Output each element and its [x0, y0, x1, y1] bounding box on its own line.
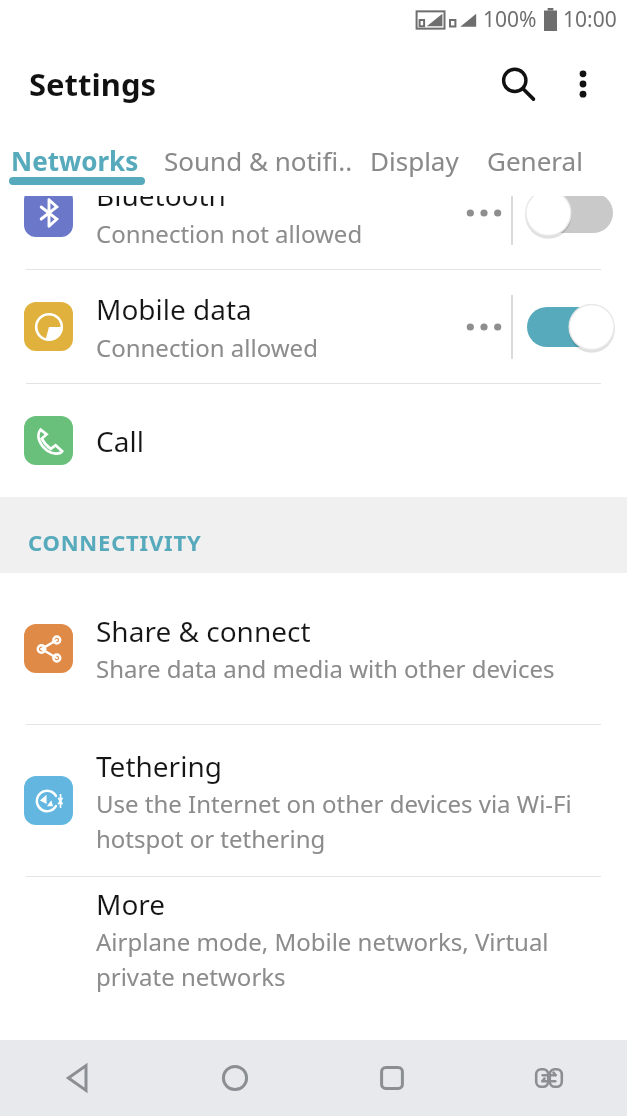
- staticText: Share data and media with other devices: [96, 652, 555, 685]
- button[interactable]: Mobile data switch: [513, 270, 627, 383]
- staticText: Use the Internet on other devices via Wi…: [96, 787, 601, 855]
- button[interactable]: Bluetooth: [0, 196, 627, 269]
- button[interactable]: Recent apps: [313, 1040, 470, 1116]
- staticText: 100%: [483, 5, 537, 34]
- staticText: Sound & notifi..: [164, 143, 353, 178]
- staticText: Networks: [11, 143, 139, 178]
- button[interactable]: Home: [156, 1040, 313, 1116]
- button[interactable]: More options: [555, 56, 611, 112]
- staticText: 10:00: [563, 5, 617, 34]
- staticText: Call: [96, 422, 144, 460]
- staticText: Settings: [29, 63, 157, 105]
- staticText: Mobile data: [96, 290, 252, 328]
- staticText: Connection not allowed: [96, 217, 363, 250]
- button[interactable]: Bluetooth switch: [513, 196, 627, 269]
- button[interactable]: Share & connect: [0, 573, 627, 724]
- button[interactable]: Mobile data options: [457, 270, 511, 383]
- button[interactable]: General: [472, 130, 612, 196]
- staticText: Display: [370, 143, 459, 178]
- button[interactable]: Split screen: [470, 1040, 627, 1116]
- staticText: General: [487, 143, 583, 178]
- staticText: Connection allowed: [96, 331, 318, 364]
- button[interactable]: Search: [487, 53, 549, 115]
- button[interactable]: Bluetooth options: [457, 196, 511, 269]
- staticText: CONNECTIVITY: [28, 527, 202, 557]
- staticText: Airplane mode, Mobile networks, Virtual …: [96, 925, 601, 993]
- button[interactable]: Display: [358, 130, 472, 196]
- button[interactable]: More: [0, 877, 627, 1000]
- button[interactable]: Call: [0, 384, 627, 497]
- staticText: Tethering: [96, 747, 222, 785]
- button[interactable]: Tethering: [0, 725, 627, 876]
- staticText: Bluetooth: [96, 196, 226, 214]
- staticText: More: [96, 885, 166, 923]
- button[interactable]: Sound & notifi..: [148, 130, 358, 196]
- button[interactable]: Networks: [0, 130, 148, 196]
- button[interactable]: Back: [0, 1040, 156, 1116]
- button[interactable]: Mobile data: [0, 270, 627, 383]
- staticText: Share & connect: [96, 612, 311, 650]
